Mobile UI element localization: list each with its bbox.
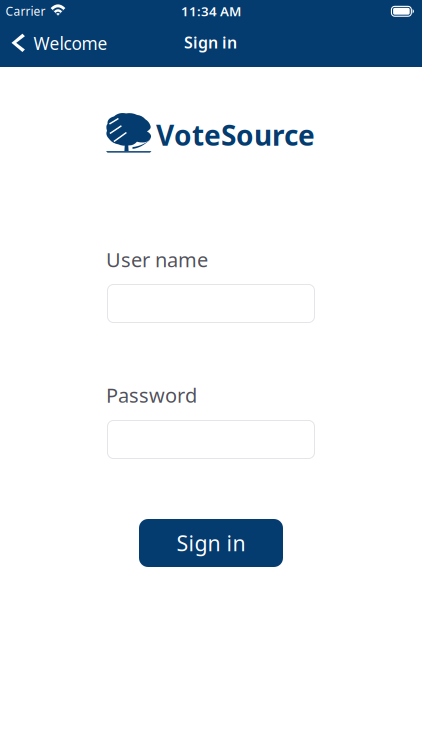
staticText: Sign in	[176, 529, 245, 557]
staticText: Welcome	[33, 32, 107, 55]
staticText: 11:34 AM	[181, 2, 241, 20]
button[interactable]: Sign in	[139, 519, 283, 567]
staticText: User name	[106, 246, 208, 273]
button[interactable]: User name	[107, 284, 315, 323]
staticText: Sign in	[184, 32, 237, 53]
button[interactable]: Back	[0, 32, 107, 55]
button[interactable]: Password	[107, 420, 315, 459]
staticText: Carrier	[5, 3, 45, 19]
staticText: Password	[106, 382, 197, 408]
staticText: VoteSource	[156, 116, 315, 154]
